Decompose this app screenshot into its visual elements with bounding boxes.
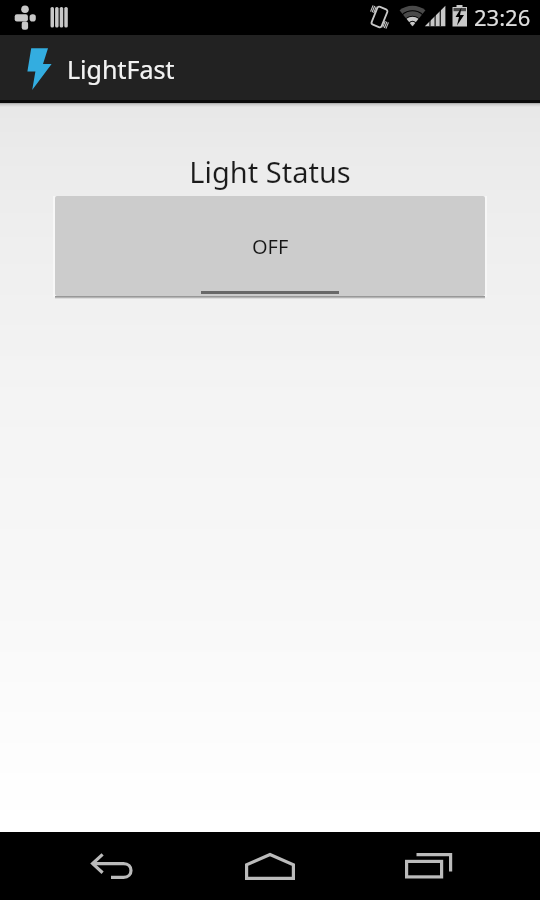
staticText: OFF bbox=[252, 233, 289, 260]
staticText: Light Status bbox=[0, 152, 540, 191]
staticText: 23:26 bbox=[474, 2, 531, 32]
button[interactable]: Back bbox=[64, 835, 164, 897]
button[interactable]: Recent apps bbox=[379, 834, 479, 898]
button[interactable]: Home bbox=[221, 833, 321, 899]
button[interactable]: LightFast bbox=[0, 35, 540, 103]
staticText: LightFast bbox=[67, 52, 175, 86]
button[interactable]: OFF bbox=[53, 196, 487, 298]
